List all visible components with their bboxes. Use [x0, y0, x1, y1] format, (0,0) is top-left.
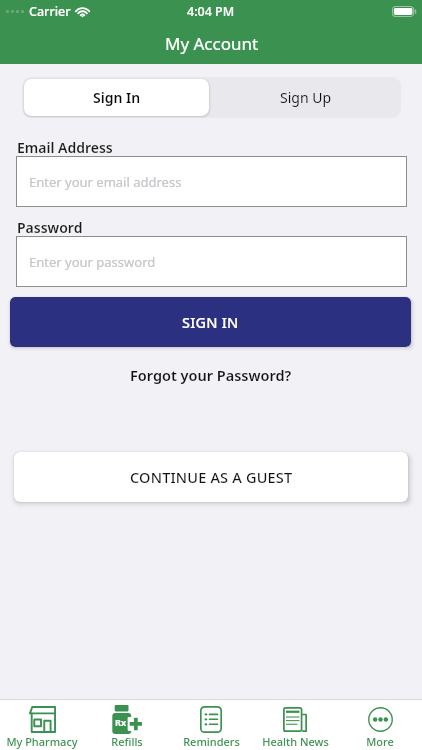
staticText: Health News [262, 734, 329, 749]
button[interactable]: Refills [85, 700, 169, 750]
button[interactable]: My Pharmacy [0, 700, 84, 750]
staticText: Reminders [183, 734, 240, 749]
staticText: Email Address [17, 138, 113, 157]
button[interactable]: Enter your password [16, 236, 407, 287]
other: Health News [283, 707, 307, 732]
staticText: More [366, 734, 394, 749]
button[interactable]: Sign In [24, 79, 209, 116]
staticText: My Pharmacy [6, 734, 78, 749]
other: Reminders [200, 706, 222, 733]
button[interactable]: Sign Up [211, 77, 401, 118]
staticText: My Account [165, 32, 259, 55]
button[interactable]: Health News [253, 700, 337, 750]
button[interactable]: More [338, 700, 422, 750]
staticText: Sign Up [280, 88, 332, 107]
staticText: SIGN IN [182, 312, 239, 332]
other: Refills [112, 705, 142, 734]
button[interactable]: Reminders [169, 700, 253, 750]
other: More [368, 707, 393, 732]
button[interactable]: CONTINUE AS A GUEST [14, 452, 408, 502]
staticText: Refills [111, 734, 143, 749]
staticText: Password [17, 218, 83, 237]
staticText: Sign In [93, 88, 141, 107]
staticText: Carrier [29, 3, 71, 20]
button[interactable]: Enter your email address [16, 156, 407, 207]
other: My Pharmacy [29, 706, 56, 733]
button[interactable]: Forgot your Password? [122, 362, 300, 388]
button[interactable]: SIGN IN [10, 297, 411, 347]
staticText: Enter your password [29, 253, 156, 271]
staticText: 4:04 PM [187, 3, 235, 20]
staticText: Rx [115, 716, 127, 728]
staticText: Enter your email address [29, 173, 182, 191]
staticText: CONTINUE AS A GUEST [130, 467, 293, 487]
